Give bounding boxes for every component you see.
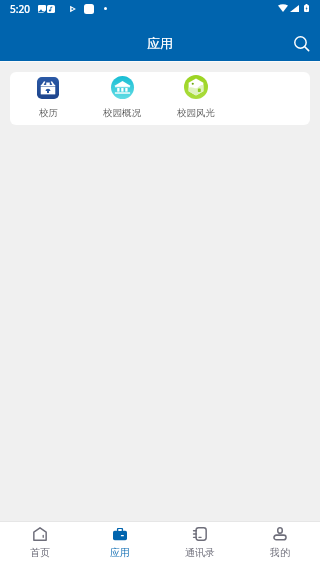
staticText: 校园概况 xyxy=(103,107,141,119)
staticText: 5:20 xyxy=(10,2,30,16)
button[interactable]: 应用 xyxy=(80,522,160,568)
staticText: 校历 xyxy=(39,107,58,119)
button[interactable]: 校园概况 xyxy=(85,75,159,119)
staticText: 我的 xyxy=(270,546,290,559)
button[interactable]: 校历 xyxy=(11,75,85,119)
button[interactable]: 校园风光 xyxy=(159,75,233,119)
button[interactable]: 通讯录 xyxy=(160,522,240,568)
staticText: 应用 xyxy=(147,35,173,51)
staticText: 校园风光 xyxy=(177,107,215,119)
staticText: 首页 xyxy=(30,546,50,559)
staticText: 通讯录 xyxy=(185,546,215,559)
button[interactable]: 我的 xyxy=(240,522,320,568)
button[interactable]: 首页 xyxy=(0,522,80,568)
button[interactable]: Search xyxy=(279,22,320,63)
staticText: 应用 xyxy=(110,546,130,559)
